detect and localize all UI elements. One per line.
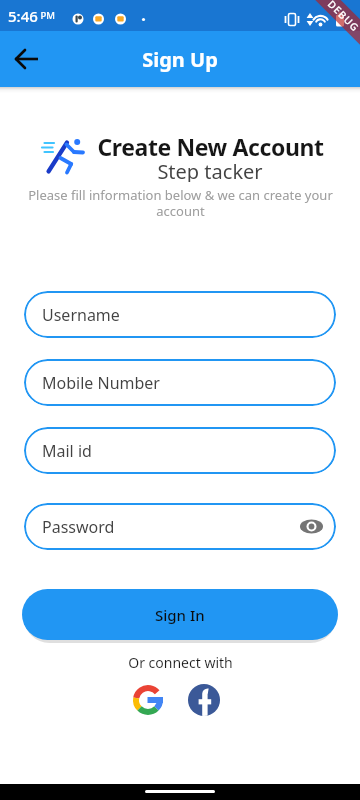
staticText: DEBUG xyxy=(325,0,360,35)
button[interactable]: Sign In xyxy=(22,589,338,640)
staticText: Sign In xyxy=(155,605,205,625)
staticText: Create New Account xyxy=(97,131,324,161)
staticText: Sign Up xyxy=(142,46,218,73)
staticText: Or connect with xyxy=(128,653,233,672)
button[interactable] xyxy=(188,684,220,716)
staticText: PM xyxy=(38,9,55,22)
button[interactable]: Password xyxy=(24,503,336,550)
staticText: Please fill information below & we can c… xyxy=(28,186,333,220)
staticText: Username xyxy=(42,304,120,326)
staticText: Mobile Number xyxy=(42,372,160,394)
staticText: Mail id xyxy=(42,440,92,462)
staticText: Step tacker xyxy=(157,158,263,182)
staticText: Password xyxy=(42,516,115,538)
button[interactable] xyxy=(5,35,53,83)
button[interactable]: Mail id xyxy=(24,427,336,474)
button[interactable] xyxy=(133,685,163,715)
button[interactable]: Mobile Number xyxy=(24,359,336,406)
button[interactable]: Username xyxy=(24,291,336,338)
staticText: 5:46 xyxy=(8,6,38,26)
